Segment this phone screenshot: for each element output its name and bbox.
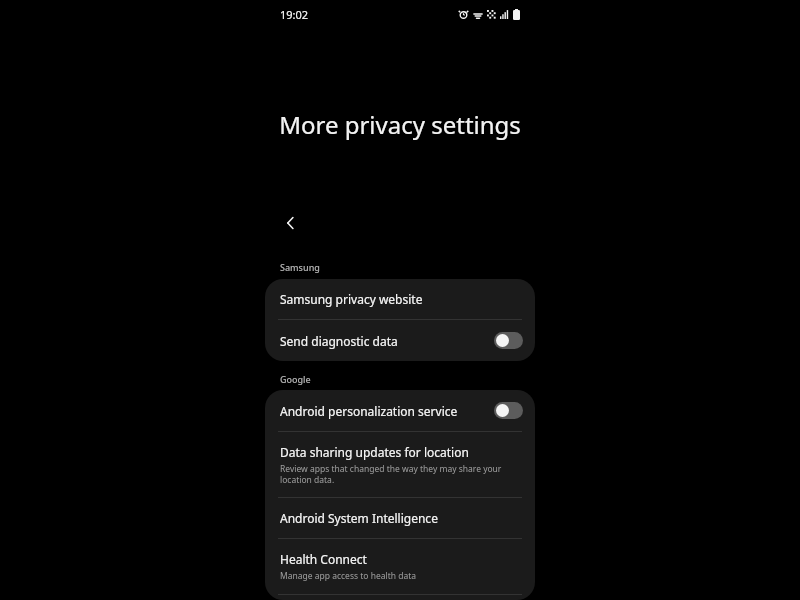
button[interactable]: Data sharing updates for location bbox=[265, 432, 535, 497]
button[interactable]: Back bbox=[275, 207, 307, 239]
button[interactable]: Android personalization service bbox=[265, 390, 535, 431]
button[interactable]: Send diagnostic data bbox=[265, 320, 535, 361]
staticText: Google bbox=[280, 373, 311, 385]
staticText: Android System Intelligence bbox=[280, 510, 438, 526]
staticText: Review apps that changed the way they ma… bbox=[280, 463, 502, 485]
button[interactable]: Samsung privacy website bbox=[265, 279, 535, 319]
button[interactable]: Toggle off bbox=[494, 402, 523, 419]
button[interactable]: Toggle off bbox=[494, 332, 523, 349]
button[interactable]: Android System Intelligence bbox=[265, 498, 535, 538]
button[interactable]: Health Connect bbox=[265, 539, 535, 594]
staticText: Health Connect bbox=[280, 551, 367, 567]
staticText: Manage app access to health data bbox=[280, 570, 417, 582]
staticText: Samsung bbox=[280, 261, 320, 273]
staticText: Send diagnostic data bbox=[280, 333, 398, 349]
staticText: Data sharing updates for location bbox=[280, 444, 469, 460]
staticText: Android personalization service bbox=[280, 403, 458, 419]
button[interactable]: Autofill service from Google bbox=[265, 595, 535, 600]
staticText: More privacy settings bbox=[265, 108, 535, 141]
staticText: Samsung privacy website bbox=[280, 291, 423, 307]
staticText: 19:02 bbox=[280, 7, 309, 22]
